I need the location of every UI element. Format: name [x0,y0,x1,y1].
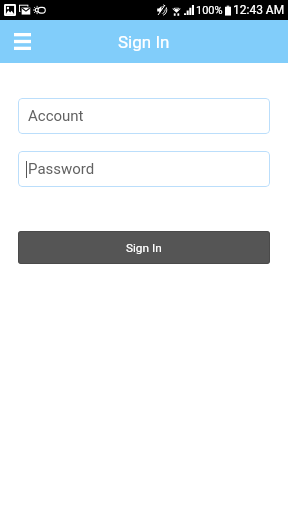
staticText: Password [28,160,95,178]
button[interactable]: Account [18,98,270,134]
button[interactable]: Sign In [18,231,270,264]
staticText: 100% [196,4,223,17]
button[interactable]: Open navigation menu [3,20,41,63]
button[interactable]: Password [18,151,270,187]
staticText: Sign In [126,241,162,255]
staticText: Sign In [118,32,170,52]
staticText: 12:43 AM [233,3,285,17]
staticText: Account [28,107,84,125]
